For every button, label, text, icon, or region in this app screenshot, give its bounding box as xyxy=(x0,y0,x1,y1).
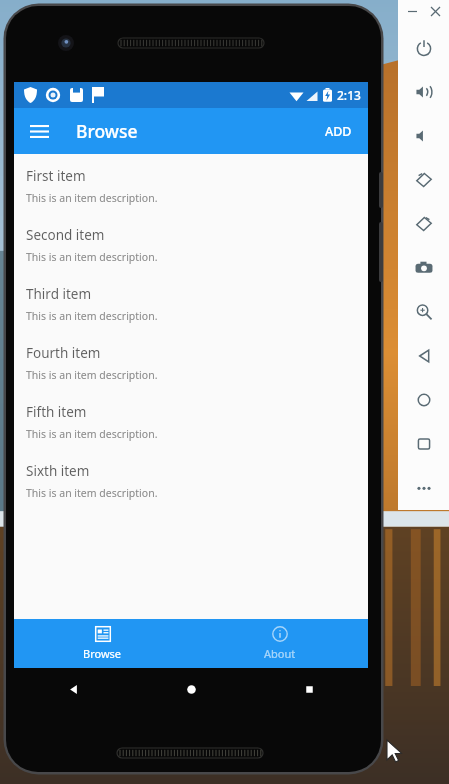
staticText: Fifth item xyxy=(26,403,87,421)
button[interactable]: Rotate left xyxy=(402,158,446,202)
button[interactable]: Home xyxy=(132,668,250,710)
staticText: This is an item description. xyxy=(26,368,158,382)
staticText: ADD xyxy=(325,123,352,140)
button[interactable]: Volume up xyxy=(402,70,446,114)
staticText: This is an item description. xyxy=(26,250,158,264)
button[interactable]: About xyxy=(191,619,368,668)
staticText: Browse xyxy=(83,646,122,661)
button[interactable]: Power xyxy=(402,26,446,70)
button[interactable]: ADD xyxy=(313,112,364,151)
button[interactable]: More xyxy=(402,466,446,510)
staticText: Fourth item xyxy=(26,344,101,362)
button[interactable]: Home xyxy=(402,378,446,422)
staticText: Second item xyxy=(26,226,105,244)
staticText: This is an item description. xyxy=(26,486,158,500)
button[interactable]: Overview xyxy=(402,422,446,466)
button[interactable]: Zoom xyxy=(402,290,446,334)
button[interactable]: Overview xyxy=(250,668,368,710)
button[interactable]: Sixth item xyxy=(14,458,368,506)
staticText: Third item xyxy=(26,285,92,303)
button[interactable]: Fifth item xyxy=(14,399,368,447)
staticText: This is an item description. xyxy=(26,309,158,323)
staticText: 2:13 xyxy=(337,87,361,103)
staticText: Browse xyxy=(76,119,138,143)
button[interactable]: Rotate right xyxy=(402,202,446,246)
button[interactable]: Screenshot xyxy=(402,246,446,290)
button[interactable]: Back xyxy=(402,334,446,378)
button[interactable]: Fourth item xyxy=(14,340,368,388)
staticText: This is an item description. xyxy=(26,427,158,441)
button[interactable]: Second item xyxy=(14,222,368,270)
button[interactable]: Close xyxy=(427,3,443,19)
button[interactable]: Third item xyxy=(14,281,368,329)
button[interactable]: Volume down xyxy=(402,114,446,158)
button[interactable]: Browse xyxy=(14,619,191,668)
button[interactable]: Open navigation drawer xyxy=(20,112,58,150)
button[interactable]: First item xyxy=(14,163,368,211)
staticText: Sixth item xyxy=(26,462,90,480)
button[interactable]: Back xyxy=(14,668,132,710)
staticText: First item xyxy=(26,167,86,185)
staticText: This is an item description. xyxy=(26,191,158,205)
staticText: About xyxy=(264,646,296,661)
button[interactable]: Minimize xyxy=(404,3,420,19)
